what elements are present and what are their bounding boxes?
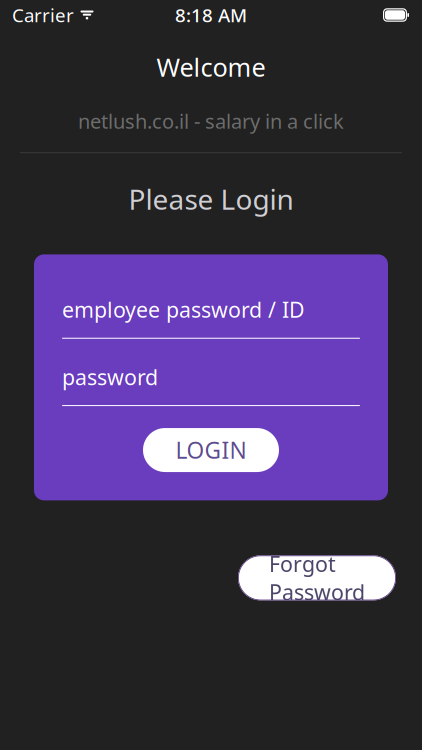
staticText: netlush.co.il - salary in a click — [78, 108, 344, 134]
staticText: Please Login — [128, 180, 293, 217]
staticText: Forgot Password — [269, 550, 365, 606]
button[interactable]: Forgot Password — [238, 555, 396, 600]
staticText: password — [62, 363, 158, 391]
staticText: LOGIN — [175, 435, 246, 465]
staticText: employee password / ID — [62, 295, 305, 324]
staticText: 8:18 AM — [175, 3, 247, 27]
button[interactable]: LOGIN — [143, 428, 279, 472]
staticText: Welcome — [156, 50, 265, 84]
staticText: Carrier — [12, 3, 74, 27]
